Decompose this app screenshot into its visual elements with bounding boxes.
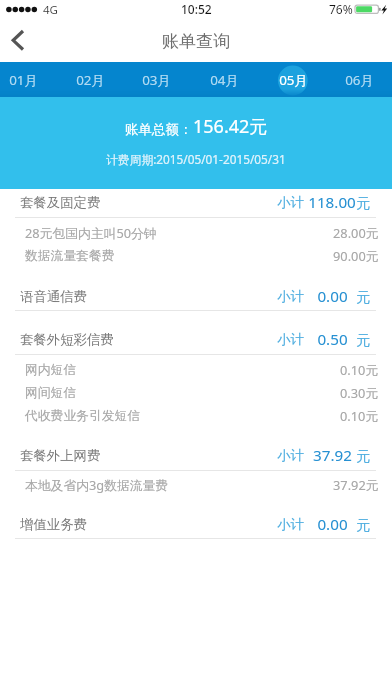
button[interactable]: 网间短信 bbox=[0, 381, 392, 404]
button[interactable]: 02月 bbox=[68, 62, 112, 97]
staticText: 小计 bbox=[277, 331, 304, 348]
staticText: 元 bbox=[356, 331, 371, 349]
staticText: 网间短信 bbox=[25, 385, 77, 401]
staticText: 28元包国内主叫50分钟 bbox=[25, 224, 157, 241]
button[interactable]: 01月 bbox=[1, 62, 45, 97]
button[interactable]: 03月 bbox=[134, 62, 178, 97]
staticText: 计费周期:2015/05/01-2015/05/31 bbox=[106, 151, 286, 167]
staticText: 37.92元 bbox=[333, 476, 379, 493]
staticText: 套餐及固定费 bbox=[20, 194, 101, 211]
staticText: 代收费业务引发短信 bbox=[25, 408, 141, 424]
staticText: 37.92 bbox=[313, 445, 352, 466]
staticText: 小计 bbox=[277, 447, 304, 464]
button[interactable]: 套餐外上网费 bbox=[0, 441, 392, 470]
staticText: 网内短信 bbox=[25, 362, 77, 378]
button[interactable]: 代收费业务引发短信 bbox=[0, 404, 392, 427]
staticText: 76% bbox=[329, 1, 353, 17]
button[interactable]: Back bbox=[0, 20, 44, 61]
button[interactable]: 增值业务费 bbox=[0, 510, 392, 539]
staticText: 05月 bbox=[279, 71, 308, 89]
staticText: 数据流量套餐费 bbox=[25, 248, 115, 264]
staticText: 02月 bbox=[76, 71, 105, 89]
button[interactable]: 套餐及固定费 bbox=[0, 188, 392, 217]
staticText: 元 bbox=[356, 194, 371, 212]
staticText: 90.00元 bbox=[333, 247, 379, 264]
staticText: 118.00 bbox=[308, 192, 356, 213]
staticText: 套餐外上网费 bbox=[20, 447, 101, 464]
staticText: 03月 bbox=[142, 71, 171, 89]
staticText: 04月 bbox=[210, 71, 239, 89]
staticText: 156.42元 bbox=[193, 114, 268, 139]
staticText: 0.00 bbox=[317, 286, 348, 307]
staticText: 01月 bbox=[9, 71, 38, 89]
button[interactable]: 06月 bbox=[337, 62, 381, 97]
button[interactable]: 本地及省内3g数据流量费 bbox=[0, 473, 392, 496]
staticText: 0.10元 bbox=[340, 361, 379, 378]
staticText: 0.10元 bbox=[340, 407, 379, 424]
staticText: 4G bbox=[43, 2, 58, 18]
staticText: 账单总额： bbox=[125, 121, 193, 138]
staticText: 06月 bbox=[345, 71, 374, 89]
staticText: 0.30元 bbox=[340, 384, 379, 401]
button[interactable]: 04月 bbox=[202, 62, 246, 97]
staticText: 0.50 bbox=[317, 329, 348, 350]
staticText: 元 bbox=[356, 447, 371, 465]
button[interactable]: 28元包国内主叫50分钟 bbox=[0, 221, 392, 244]
staticText: 元 bbox=[356, 288, 371, 306]
staticText: 0.00 bbox=[317, 514, 348, 535]
staticText: 本地及省内3g数据流量费 bbox=[25, 476, 169, 493]
staticText: 增值业务费 bbox=[20, 516, 87, 533]
staticText: 语音通信费 bbox=[20, 288, 87, 305]
button[interactable]: 数据流量套餐费 bbox=[0, 244, 392, 267]
staticText: 小计 bbox=[277, 516, 304, 533]
staticText: 套餐外短彩信费 bbox=[20, 331, 114, 348]
button[interactable]: 05月 bbox=[271, 62, 315, 97]
staticText: 小计 bbox=[277, 194, 304, 211]
button[interactable]: 语音通信费 bbox=[0, 282, 392, 311]
staticText: 元 bbox=[356, 516, 371, 534]
staticText: 账单查询 bbox=[162, 31, 230, 52]
staticText: 28.00元 bbox=[333, 224, 379, 241]
button[interactable]: 网内短信 bbox=[0, 358, 392, 381]
staticText: 10:52 bbox=[181, 1, 212, 17]
staticText: 小计 bbox=[277, 288, 304, 305]
button[interactable]: 套餐外短彩信费 bbox=[0, 325, 392, 354]
